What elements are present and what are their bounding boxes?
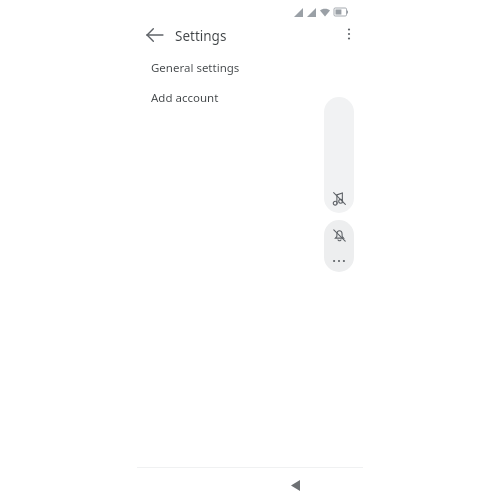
button[interactable]: Volume settings (324, 250, 354, 272)
staticText: Settings (175, 27, 227, 45)
button[interactable]: Add account (143, 86, 323, 110)
button[interactable]: Back (143, 23, 167, 47)
button[interactable]: Ring mute (324, 220, 354, 250)
button[interactable]: General settings (143, 56, 323, 80)
button[interactable]: More options (339, 24, 359, 44)
button[interactable]: Back (283, 473, 307, 497)
staticText: General settings (151, 60, 240, 76)
staticText: Add account (151, 90, 219, 106)
button[interactable]: Media volume (324, 97, 354, 213)
